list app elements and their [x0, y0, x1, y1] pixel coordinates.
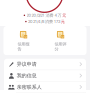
button[interactable]: 亲密联系人 [4, 81, 86, 92]
staticText: 我的信息 [17, 72, 37, 79]
staticText: 信用报告 [17, 41, 29, 52]
staticText: 异议申请 [17, 61, 37, 67]
staticText: 信用评分 [54, 41, 66, 52]
staticText: 2021/4/8 消费 173 [28, 19, 60, 24]
staticText: 2020/3/21 消费 4万 [27, 13, 62, 18]
staticText: 元 [61, 19, 65, 24]
staticText: 元 [62, 13, 66, 18]
button[interactable]: 信用评分 [53, 31, 68, 52]
button[interactable]: 信用报告 [16, 31, 31, 52]
button[interactable]: 异议申请 [4, 59, 86, 70]
staticText: 亲密联系人 [17, 84, 42, 90]
button[interactable]: 我的信息 [4, 70, 86, 81]
